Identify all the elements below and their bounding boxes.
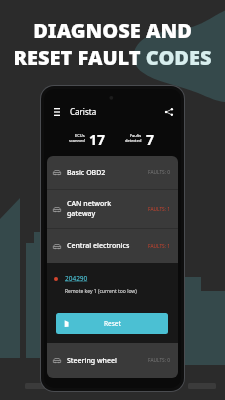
staticText: scanned	[69, 138, 85, 143]
staticText: gateway	[67, 209, 96, 219]
staticText: RESET FAULT CODES	[13, 44, 212, 71]
staticText: CAN network	[67, 199, 112, 209]
staticText: Reset	[104, 319, 121, 328]
staticText: 17	[89, 130, 106, 146]
button[interactable]: Reset	[56, 313, 168, 334]
staticText: DIAGNOSE AND	[33, 17, 192, 44]
button[interactable]: Steering wheel	[47, 343, 178, 378]
button[interactable]: Share	[161, 104, 176, 119]
button[interactable]: 204290	[65, 274, 88, 283]
staticText: Faults	[130, 133, 142, 138]
button[interactable]: CAN network	[47, 190, 178, 228]
staticText: detected	[125, 138, 142, 143]
staticText: FAULTS: 1	[148, 206, 170, 213]
staticText: 7	[146, 130, 155, 146]
button[interactable]: Basic OBD2	[47, 156, 178, 189]
staticText: Central electronics	[67, 241, 130, 251]
staticText: Remote key 1 (current too low)	[65, 288, 137, 295]
staticText: ECUs	[75, 133, 85, 138]
button[interactable]: Open navigation menu	[49, 104, 64, 119]
staticText: Basic OBD2	[67, 168, 106, 178]
staticText: FAULTS: 0	[148, 357, 170, 364]
staticText: FAULTS: 0	[148, 169, 170, 176]
staticText: Carista	[70, 106, 97, 117]
staticText: FAULTS: 1	[148, 243, 170, 250]
staticText: Steering wheel	[67, 356, 117, 366]
button[interactable]: Central electronics	[47, 229, 178, 263]
